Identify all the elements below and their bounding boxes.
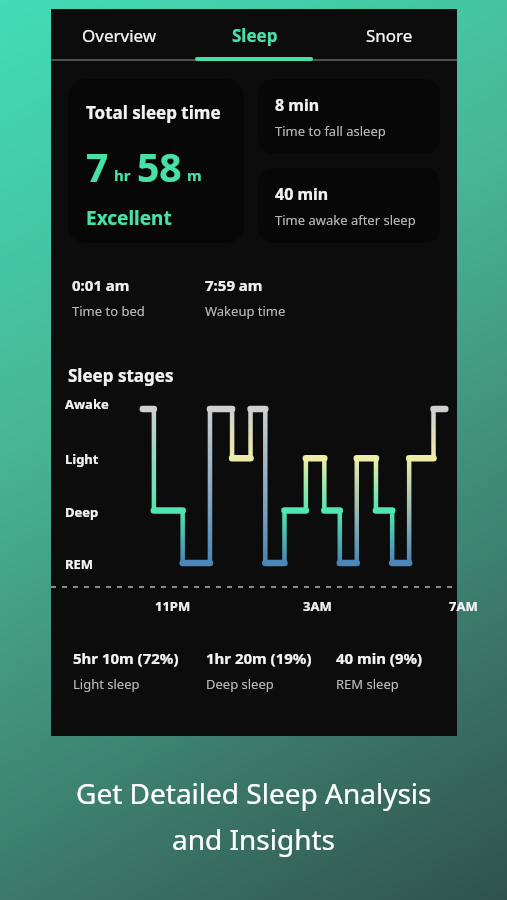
staticText: 11PM: [155, 597, 191, 615]
staticText: 5hr 10m (72%): [73, 648, 179, 668]
staticText: Time to bed: [72, 302, 145, 320]
staticText: hr: [114, 165, 131, 185]
staticText: 40 min: [275, 183, 329, 205]
staticText: Time awake after sleep: [275, 211, 416, 229]
staticText: Sleep: [232, 24, 278, 47]
staticText: 1hr 20m (19%): [206, 648, 312, 668]
button[interactable]: 8 min: [258, 79, 440, 154]
staticText: REM: [65, 555, 94, 573]
staticText: Awake: [65, 395, 109, 413]
staticText: 0:01 am: [72, 275, 130, 295]
staticText: 7:59 am: [205, 275, 263, 295]
button[interactable]: Snore: [322, 9, 457, 61]
staticText: Time to fall asleep: [275, 122, 386, 140]
staticText: 7AM: [449, 597, 478, 615]
staticText: and Insights: [172, 820, 335, 858]
staticText: 3AM: [303, 597, 332, 615]
staticText: 58: [137, 140, 182, 193]
staticText: 40 min (9%): [336, 648, 423, 668]
button[interactable]: Total sleep time: [68, 79, 244, 243]
staticText: Light: [65, 450, 99, 468]
button[interactable]: 40 min: [258, 168, 440, 243]
staticText: 7: [86, 140, 109, 193]
staticText: Light sleep: [73, 675, 140, 693]
staticText: Total sleep time: [86, 101, 221, 124]
staticText: Snore: [366, 24, 413, 47]
staticText: Excellent: [86, 205, 172, 231]
staticText: Wakeup time: [205, 302, 286, 320]
staticText: Deep: [65, 503, 99, 521]
staticText: REM sleep: [336, 675, 399, 693]
staticText: Get Detailed Sleep Analysis: [76, 774, 432, 812]
staticText: Sleep stages: [68, 364, 174, 387]
staticText: m: [187, 165, 202, 185]
staticText: Deep sleep: [206, 675, 274, 693]
button[interactable]: Overview: [51, 9, 187, 61]
staticText: 8 min: [275, 94, 320, 116]
staticText: Overview: [82, 24, 157, 47]
button[interactable]: Sleep: [187, 9, 322, 61]
